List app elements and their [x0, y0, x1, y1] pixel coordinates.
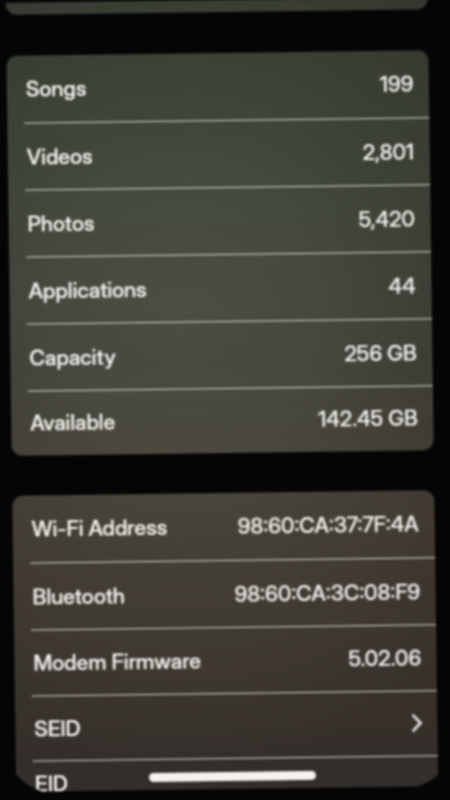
staticText: 256 GB	[344, 339, 417, 366]
button[interactable]: Photos	[8, 185, 431, 258]
button[interactable]: EID	[16, 756, 438, 800]
staticText: Videos	[27, 143, 93, 170]
staticText: 5.02.06	[348, 644, 422, 671]
button[interactable]: Wi-Fi Address	[12, 490, 435, 564]
staticText: EID	[35, 770, 68, 796]
staticText: 44	[388, 272, 417, 299]
staticText: 199	[380, 70, 414, 97]
button[interactable]: Applications	[9, 252, 432, 325]
button[interactable]: Bluetooth	[13, 558, 436, 631]
staticText: 98:60:CA:37:7F:4A	[237, 510, 420, 539]
button[interactable]: Videos	[7, 118, 430, 191]
button[interactable]: Songs	[6, 50, 429, 124]
staticText: Applications	[28, 276, 148, 304]
staticText: Wi-Fi Address	[31, 514, 168, 542]
staticText: Capacity	[29, 343, 116, 371]
button[interactable]: Modem Firmware	[14, 625, 437, 697]
staticText: Modem Firmware	[33, 647, 202, 675]
staticText: 2,801	[363, 138, 415, 165]
staticText: Available	[30, 408, 115, 436]
staticText: Songs	[26, 75, 87, 102]
staticText: 142.45 GB	[318, 404, 418, 432]
button[interactable]: SEID, show details	[15, 691, 438, 762]
staticText: SEID	[34, 715, 81, 741]
staticText: Bluetooth	[32, 582, 126, 609]
staticText: 5,420	[358, 205, 416, 232]
button[interactable]: Capacity	[10, 319, 433, 392]
button[interactable]: Available	[11, 386, 434, 456]
staticText: 98:60:CA:3C:08:F9	[234, 578, 421, 607]
staticText: Photos	[27, 210, 95, 237]
